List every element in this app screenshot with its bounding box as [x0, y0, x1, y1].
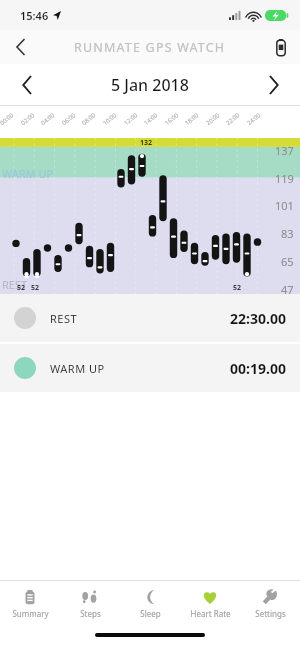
staticText: 5 Jan 2018 [111, 74, 189, 96]
staticText: 14:00 [142, 111, 160, 127]
button[interactable]: WARM UP [0, 344, 300, 392]
button[interactable]: Heart Rate [180, 581, 240, 626]
staticText: 22:00 [224, 111, 242, 127]
staticText: 22:30.00 [230, 309, 286, 328]
button[interactable]: Back [0, 30, 42, 64]
staticText: Settings [255, 608, 286, 619]
staticText: 47 [281, 282, 294, 297]
staticText: REST [50, 311, 78, 326]
staticText: 52 [17, 283, 26, 293]
staticText: Heart Rate [190, 608, 231, 619]
button[interactable]: Settings [240, 581, 300, 626]
staticText: 24:00 [245, 111, 263, 127]
staticText: 00:19.00 [230, 359, 286, 378]
button[interactable]: Summary [0, 581, 60, 626]
staticText: 65 [281, 254, 294, 269]
staticText: 52 [31, 283, 40, 293]
staticText: 52 [233, 283, 242, 293]
staticText: 02:00 [19, 111, 37, 127]
staticText: 00:00 [0, 111, 16, 127]
staticText: REST [2, 277, 28, 292]
staticText: 20:00 [204, 111, 222, 127]
staticText: 15:46 [20, 8, 49, 23]
staticText: Summary [12, 608, 49, 619]
staticText: 132 [140, 138, 153, 148]
staticText: WARM UP [50, 361, 105, 376]
button[interactable]: Next day [246, 64, 300, 106]
button[interactable]: Previous day [0, 64, 54, 106]
staticText: 08:00 [80, 111, 98, 127]
button[interactable]: Watch battery [262, 30, 300, 64]
staticText: 101 [275, 198, 294, 213]
staticText: RUNMATE GPS WATCH [74, 39, 226, 56]
staticText: 10:00 [101, 111, 119, 127]
staticText: 119 [275, 171, 294, 186]
staticText: WARM UP [2, 166, 54, 181]
staticText: 06:00 [60, 111, 78, 127]
staticText: 137 [275, 143, 294, 158]
staticText: 18:00 [183, 111, 201, 127]
staticText: 04:00 [39, 111, 57, 127]
button[interactable]: Steps [60, 581, 120, 626]
staticText: 12:00 [122, 111, 140, 127]
staticText: 83 [281, 226, 294, 241]
button[interactable]: REST [0, 294, 300, 342]
button[interactable]: Sleep [120, 581, 180, 626]
staticText: Sleep [140, 608, 161, 619]
staticText: 16:00 [163, 111, 181, 127]
staticText: Steps [80, 608, 101, 619]
